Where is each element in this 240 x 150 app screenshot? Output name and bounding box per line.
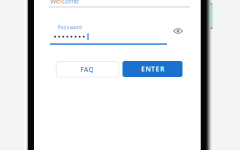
staticText: Welcome	[50, 0, 79, 5]
button[interactable]: FAQ	[56, 61, 119, 77]
button[interactable]: Show password	[170, 23, 186, 39]
staticText: ENTER	[141, 65, 164, 73]
staticText: Password	[57, 24, 81, 31]
staticText: FAQ	[80, 65, 93, 74]
button[interactable]: ENTER	[122, 61, 182, 77]
